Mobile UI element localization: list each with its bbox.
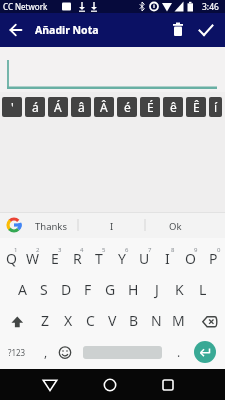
staticText: ' bbox=[11, 99, 14, 115]
staticText: . bbox=[177, 344, 181, 360]
staticText: D bbox=[61, 280, 72, 299]
staticText: V bbox=[108, 311, 117, 330]
staticText: 5 bbox=[102, 246, 106, 254]
button[interactable]: É bbox=[140, 97, 160, 117]
staticText: é bbox=[124, 99, 131, 115]
staticText: F bbox=[84, 280, 92, 299]
staticText: 2 bbox=[36, 246, 40, 254]
staticText: 7 bbox=[148, 246, 152, 254]
button[interactable]: . bbox=[171, 335, 187, 369]
button[interactable]: â bbox=[71, 97, 91, 117]
button[interactable]: X bbox=[57, 305, 79, 335]
button[interactable]: I bbox=[78, 212, 145, 238]
staticText: S bbox=[40, 280, 48, 299]
button[interactable]: I bbox=[156, 238, 179, 274]
button[interactable]: Thanks bbox=[24, 212, 78, 238]
staticText: á bbox=[32, 99, 39, 115]
button[interactable] bbox=[35, 370, 65, 400]
staticText: M bbox=[172, 311, 185, 330]
staticText: 3 bbox=[58, 246, 62, 254]
button[interactable]: L bbox=[191, 274, 214, 305]
button[interactable]: R bbox=[66, 238, 88, 274]
button[interactable] bbox=[0, 14, 32, 46]
staticText: H bbox=[128, 280, 139, 299]
button[interactable]: M bbox=[167, 305, 189, 335]
staticText: Á bbox=[54, 99, 62, 115]
staticText: J bbox=[155, 280, 159, 299]
staticText: W bbox=[26, 249, 40, 268]
button[interactable]: G bbox=[99, 274, 122, 305]
staticText: Thanks bbox=[35, 220, 67, 233]
button[interactable] bbox=[95, 370, 125, 400]
button[interactable]: Ok bbox=[145, 212, 205, 238]
staticText: 0 bbox=[217, 246, 221, 254]
button[interactable]: P bbox=[202, 238, 225, 274]
button[interactable]: Q bbox=[0, 238, 22, 274]
staticText: U bbox=[139, 249, 150, 268]
button[interactable]: T bbox=[88, 238, 110, 274]
button[interactable]: é bbox=[117, 97, 137, 117]
staticText: X bbox=[64, 311, 73, 330]
staticText: R bbox=[73, 249, 82, 268]
button[interactable]: ê bbox=[163, 97, 183, 117]
button[interactable]: E bbox=[44, 238, 66, 274]
staticText: N bbox=[151, 311, 162, 330]
staticText: Â bbox=[100, 99, 108, 115]
staticText: í bbox=[214, 99, 218, 115]
staticText: Q bbox=[6, 249, 17, 268]
button[interactable]: K bbox=[168, 274, 191, 305]
staticText: 8 bbox=[171, 246, 175, 254]
button[interactable]: á bbox=[25, 97, 45, 117]
staticText: Z bbox=[41, 311, 50, 330]
button[interactable]: U bbox=[133, 238, 156, 274]
button[interactable] bbox=[194, 305, 225, 335]
button[interactable] bbox=[194, 341, 216, 363]
button[interactable]: í bbox=[209, 97, 222, 117]
button[interactable]: D bbox=[55, 274, 77, 305]
button[interactable]: W bbox=[22, 238, 44, 274]
button[interactable]: Â bbox=[94, 97, 114, 117]
button[interactable]: O bbox=[179, 238, 202, 274]
staticText: G bbox=[105, 280, 116, 299]
button[interactable]: H bbox=[122, 274, 145, 305]
button[interactable]: J bbox=[145, 274, 168, 305]
button[interactable] bbox=[54, 335, 76, 369]
button[interactable]: B bbox=[123, 305, 145, 335]
staticText: C bbox=[86, 311, 95, 330]
button[interactable]: N bbox=[145, 305, 167, 335]
button[interactable] bbox=[0, 305, 31, 335]
staticText: L bbox=[199, 280, 207, 299]
staticText: T bbox=[95, 249, 103, 268]
staticText: 1 bbox=[14, 246, 18, 254]
button[interactable] bbox=[164, 16, 192, 44]
staticText: 6 bbox=[125, 246, 129, 254]
button[interactable]: F bbox=[77, 274, 99, 305]
staticText: Añadir Nota bbox=[35, 23, 99, 37]
button[interactable]: A bbox=[11, 274, 33, 305]
staticText: I bbox=[165, 249, 170, 268]
button[interactable]: ' bbox=[2, 97, 22, 117]
button[interactable] bbox=[153, 370, 183, 400]
staticText: ?123 bbox=[8, 347, 26, 358]
button[interactable]: S bbox=[33, 274, 55, 305]
staticText: â bbox=[78, 99, 85, 115]
staticText: Ê bbox=[193, 99, 200, 115]
button[interactable]: C bbox=[79, 305, 101, 335]
staticText: A bbox=[18, 280, 27, 299]
staticText: E bbox=[51, 249, 59, 268]
staticText: CC Network bbox=[3, 1, 48, 12]
button[interactable]: Y bbox=[110, 238, 133, 274]
button[interactable]: ?123 bbox=[0, 335, 34, 369]
staticText: , bbox=[44, 344, 48, 360]
button[interactable]: , bbox=[37, 335, 55, 369]
button[interactable] bbox=[0, 47, 225, 92]
staticText: 4 bbox=[80, 246, 84, 254]
staticText: ê bbox=[170, 99, 177, 115]
button[interactable]: V bbox=[101, 305, 123, 335]
button[interactable] bbox=[192, 16, 220, 44]
button[interactable]: Z bbox=[34, 305, 57, 335]
button[interactable]: Á bbox=[48, 97, 68, 117]
button[interactable]: Ê bbox=[186, 97, 206, 117]
staticText: O bbox=[185, 249, 196, 268]
